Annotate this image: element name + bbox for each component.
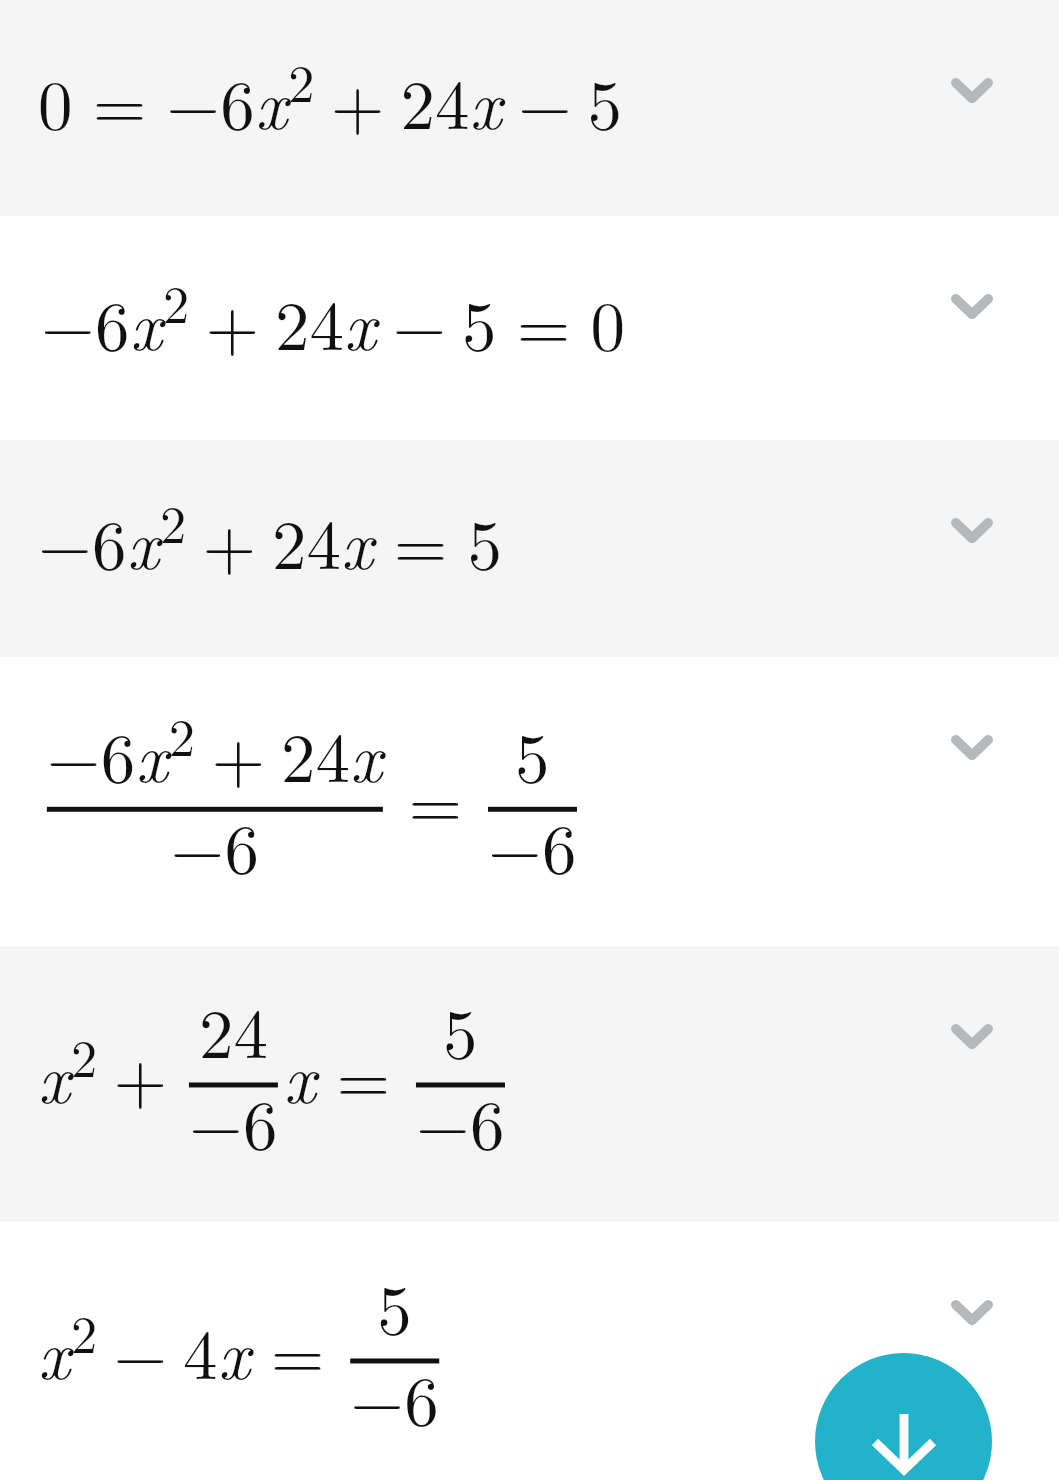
button[interactable]: Expand step [927, 494, 1017, 566]
button[interactable]: Expand step [927, 1276, 1017, 1348]
button[interactable]: Expand step [0, 1222, 1059, 1480]
button[interactable]: Expand step [927, 270, 1017, 342]
button[interactable]: Scroll down [815, 1353, 992, 1480]
button[interactable]: Expand step [0, 440, 1059, 657]
button[interactable]: Expand step [0, 216, 1059, 440]
button[interactable]: Expand step [927, 54, 1017, 126]
button[interactable]: Expand step [927, 711, 1017, 783]
button[interactable]: Expand step [0, 0, 1059, 216]
button[interactable]: Expand step [0, 657, 1059, 946]
button[interactable]: Expand step [927, 1000, 1017, 1072]
button[interactable]: Expand step [0, 946, 1059, 1222]
